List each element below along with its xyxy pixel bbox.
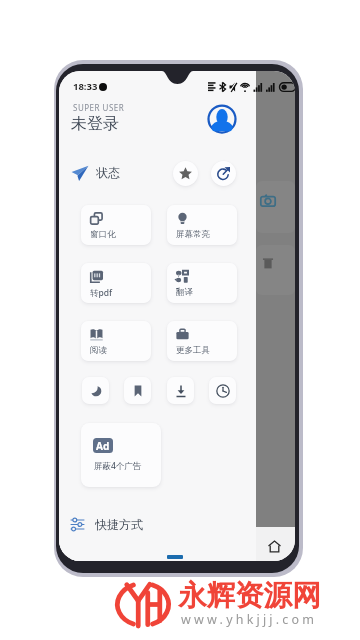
staticText: 未登录 — [71, 114, 119, 134]
staticText: 永辉资源网 — [178, 578, 321, 614]
button[interactable]: 窗口化 — [81, 205, 151, 245]
staticText: 屏蔽4个广告 — [94, 460, 142, 472]
staticText: 翻译 — [176, 287, 193, 298]
button[interactable]: Home — [263, 535, 285, 557]
staticText: SUPER USER — [73, 102, 125, 113]
button[interactable]: Night mode — [82, 377, 109, 404]
staticText: 窗口化 — [90, 229, 116, 240]
button[interactable]: 更多工具 — [167, 321, 237, 361]
staticText: 18:33 — [73, 80, 98, 93]
button[interactable]: Download — [167, 377, 194, 404]
staticText: 快捷方式 — [95, 517, 143, 532]
button[interactable]: Bookmark — [124, 377, 151, 404]
staticText: 更多工具 — [176, 345, 210, 356]
button[interactable]: 阅读 — [81, 321, 151, 361]
staticText: Ad — [96, 439, 110, 453]
button[interactable]: Favorite — [173, 161, 198, 186]
button[interactable]: 屏幕常亮 — [167, 205, 237, 245]
staticText: 转pdf — [90, 287, 113, 299]
button[interactable]: 翻译 — [167, 263, 237, 303]
staticText: 状态 — [96, 165, 120, 180]
button[interactable]: 快捷方式 — [59, 511, 256, 537]
staticText: 阅读 — [90, 345, 107, 356]
button[interactable]: Ad — [81, 423, 161, 487]
staticText: www.yhkjjj.com — [181, 611, 318, 628]
staticText: 屏幕常亮 — [176, 229, 210, 240]
button[interactable]: Refresh — [211, 161, 236, 186]
button[interactable]: 转pdf — [81, 263, 151, 303]
button[interactable]: Account — [206, 103, 238, 135]
button[interactable]: History — [209, 377, 236, 404]
